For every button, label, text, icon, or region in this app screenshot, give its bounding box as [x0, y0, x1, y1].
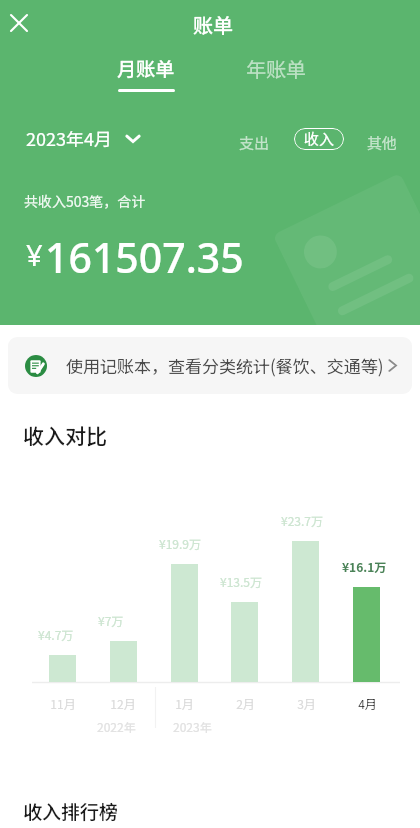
button[interactable]: 其他: [364, 128, 401, 158]
button[interactable]: Close: [3, 7, 35, 39]
button[interactable]: 使用记账本，查看分类统计(餐饮、交通等): [8, 337, 412, 394]
staticText: 11月: [50, 695, 76, 712]
staticText: 年账单: [246, 54, 306, 83]
staticText: ¥16.1万: [342, 558, 387, 575]
staticText: ¥19.9万: [159, 535, 201, 552]
staticText: 收入排行榜: [23, 797, 119, 825]
button[interactable]: 月账单: [113, 54, 179, 92]
staticText: 使用记账本，查看分类统计(餐饮、交通等): [66, 353, 384, 378]
staticText: ¥4.7万: [38, 626, 74, 643]
staticText: 12月: [110, 695, 136, 712]
button[interactable]: 2023年4月: [26, 122, 140, 154]
staticText: 其他: [367, 132, 398, 154]
staticText: 2022年: [97, 718, 136, 735]
staticText: 4月: [358, 695, 377, 712]
staticText: 账单: [193, 10, 233, 39]
staticText: 收入: [304, 128, 335, 150]
staticText: ¥7万: [98, 612, 124, 629]
staticText: ¥13.5万: [220, 573, 262, 590]
staticText: 1月: [175, 695, 194, 712]
staticText: 收入对比: [23, 420, 107, 450]
staticText: 共收入503笔，合计: [24, 191, 146, 211]
staticText: 2月: [236, 695, 255, 712]
button[interactable]: 年账单: [243, 54, 309, 83]
staticText: 2023年4月: [26, 125, 112, 151]
staticText: 支出: [239, 132, 270, 154]
button[interactable]: 收入: [294, 128, 344, 150]
staticText: 161507.35: [45, 229, 244, 285]
staticText: ¥: [26, 235, 43, 274]
staticText: 2023年: [173, 718, 212, 735]
staticText: 月账单: [117, 54, 175, 82]
staticText: 3月: [297, 695, 316, 712]
button[interactable]: 支出: [236, 128, 273, 158]
staticText: ¥23.7万: [281, 512, 323, 529]
